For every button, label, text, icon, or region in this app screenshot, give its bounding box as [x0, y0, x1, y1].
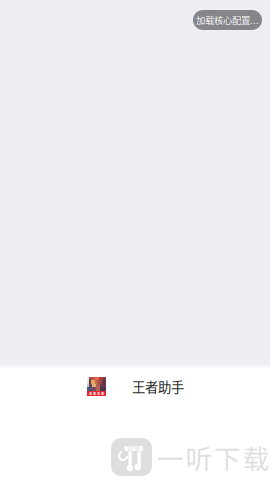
button[interactable]: 王者助手 — [0, 377, 270, 396]
staticText: 王者助手 — [132, 377, 184, 396]
staticText: 欢聚 — [127, 444, 141, 453]
staticText: 加载核心配置... — [196, 13, 259, 27]
button[interactable]: 加载核心配置... — [193, 10, 262, 30]
staticText: 一听下载 — [157, 438, 269, 476]
